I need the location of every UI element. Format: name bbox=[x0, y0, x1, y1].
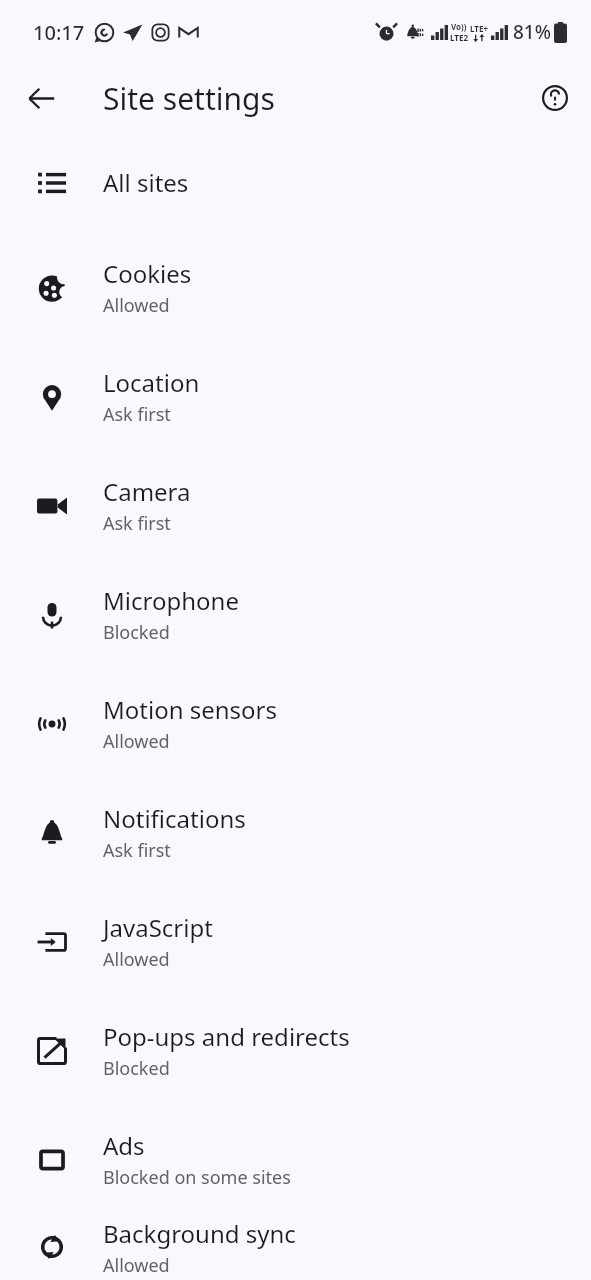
staticText: Pop-ups and redirects bbox=[103, 1020, 350, 1053]
button[interactable]: Microphone bbox=[0, 560, 591, 669]
staticText: Allowed bbox=[103, 947, 170, 972]
staticText: Ask first bbox=[103, 402, 171, 427]
button[interactable]: Camera bbox=[0, 451, 591, 560]
button[interactable]: Back bbox=[17, 74, 65, 122]
staticText: JavaScript bbox=[103, 911, 213, 944]
staticText: Notifications bbox=[103, 802, 246, 835]
staticText: Allowed bbox=[103, 293, 170, 318]
button[interactable]: Background sync bbox=[0, 1214, 591, 1280]
staticText: Camera bbox=[103, 475, 191, 508]
staticText: Background sync bbox=[103, 1217, 296, 1250]
button[interactable]: JavaScript bbox=[0, 887, 591, 996]
staticText: Location bbox=[103, 366, 200, 399]
button[interactable]: Help bbox=[532, 75, 578, 121]
staticText: Site settings bbox=[103, 78, 275, 119]
staticText: 81% bbox=[513, 19, 551, 45]
button[interactable]: Pop-ups and redirects bbox=[0, 996, 591, 1105]
button[interactable]: Cookies bbox=[0, 233, 591, 342]
staticText: Vo)) bbox=[451, 21, 467, 32]
staticText: LTE2 bbox=[450, 32, 468, 43]
button[interactable]: Motion sensors bbox=[0, 669, 591, 778]
button[interactable]: Notifications bbox=[0, 778, 591, 887]
staticText: Blocked bbox=[103, 1056, 170, 1081]
staticText: Allowed bbox=[103, 1253, 170, 1278]
staticText: All sites bbox=[103, 166, 189, 199]
button[interactable]: Location bbox=[0, 342, 591, 451]
staticText: LTE+ bbox=[470, 23, 488, 34]
staticText: Motion sensors bbox=[103, 693, 278, 726]
staticText: Blocked on some sites bbox=[103, 1165, 291, 1190]
staticText: 10:17 bbox=[33, 19, 85, 46]
staticText: Ads bbox=[103, 1129, 145, 1162]
staticText: Cookies bbox=[103, 257, 192, 290]
button[interactable]: All sites bbox=[0, 132, 591, 233]
staticText: Ask first bbox=[103, 511, 171, 536]
staticText: Microphone bbox=[103, 584, 239, 617]
staticText: Blocked bbox=[103, 620, 170, 645]
button[interactable]: Ads bbox=[0, 1105, 591, 1214]
staticText: Ask first bbox=[103, 838, 171, 863]
staticText: Allowed bbox=[103, 729, 170, 754]
